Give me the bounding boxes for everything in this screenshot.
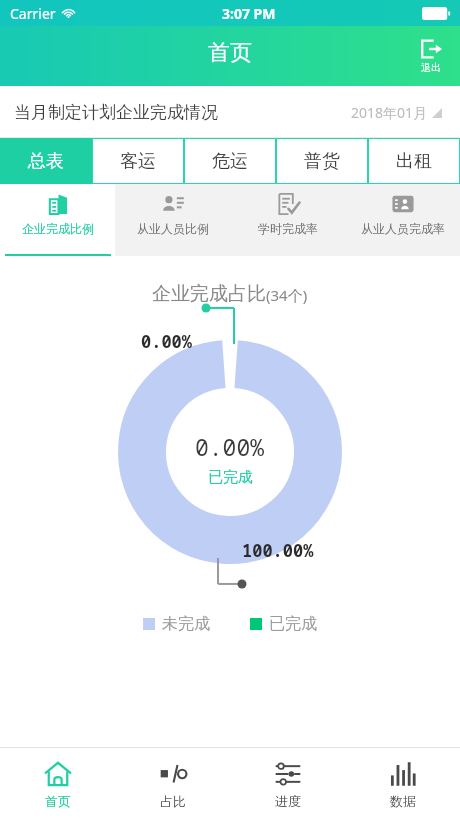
staticText: 0.00%	[141, 330, 192, 353]
button[interactable]: 出租	[368, 138, 460, 184]
staticText: 总表	[28, 150, 64, 173]
staticText: 已完成	[269, 614, 317, 634]
staticText: 学时完成率	[258, 221, 318, 236]
button[interactable]: 2018年01月	[347, 99, 446, 126]
staticText: 普货	[304, 150, 340, 173]
staticText: 企业完成占比	[152, 282, 266, 306]
button[interactable]: 退出	[416, 36, 446, 76]
button[interactable]: 总表	[0, 138, 92, 184]
button[interactable]: 首页	[0, 748, 115, 818]
button[interactable]: 客运	[92, 138, 184, 184]
button[interactable]: 企业完成比例	[0, 184, 115, 256]
staticText: 出租	[396, 150, 432, 173]
button[interactable]: 从业人员完成率	[345, 184, 460, 256]
staticText: 0.00%	[195, 431, 265, 462]
staticText: 未完成	[162, 614, 210, 634]
button[interactable]: 普货	[276, 138, 368, 184]
button[interactable]: 学时完成率	[230, 184, 345, 256]
staticText: 从业人员比例	[137, 221, 209, 236]
button[interactable]: 数据	[345, 748, 460, 818]
button[interactable]: 进度	[230, 748, 345, 818]
staticText: 首页	[208, 39, 252, 67]
button[interactable]: 占比	[115, 748, 230, 818]
button[interactable]: 从业人员比例	[115, 184, 230, 256]
staticText: 数据	[390, 793, 416, 809]
staticText: 当月制定计划企业完成情况	[14, 102, 218, 123]
staticText: 进度	[275, 793, 301, 809]
staticText: 从业人员完成率	[361, 221, 445, 236]
staticText: 退出	[421, 61, 441, 74]
staticText: 危运	[212, 150, 248, 173]
staticText: Carrier	[10, 4, 56, 23]
staticText: 3:07 PM	[222, 4, 276, 23]
staticText: 占比	[160, 793, 186, 809]
staticText: 100.00%	[242, 539, 314, 562]
button[interactable]: 危运	[184, 138, 276, 184]
staticText: 首页	[45, 793, 71, 809]
staticText: 已完成	[208, 468, 253, 487]
staticText: 2018年01月	[351, 103, 428, 122]
staticText: 企业完成比例	[22, 221, 94, 236]
staticText: (34个)	[266, 285, 308, 305]
staticText: 客运	[120, 150, 156, 173]
